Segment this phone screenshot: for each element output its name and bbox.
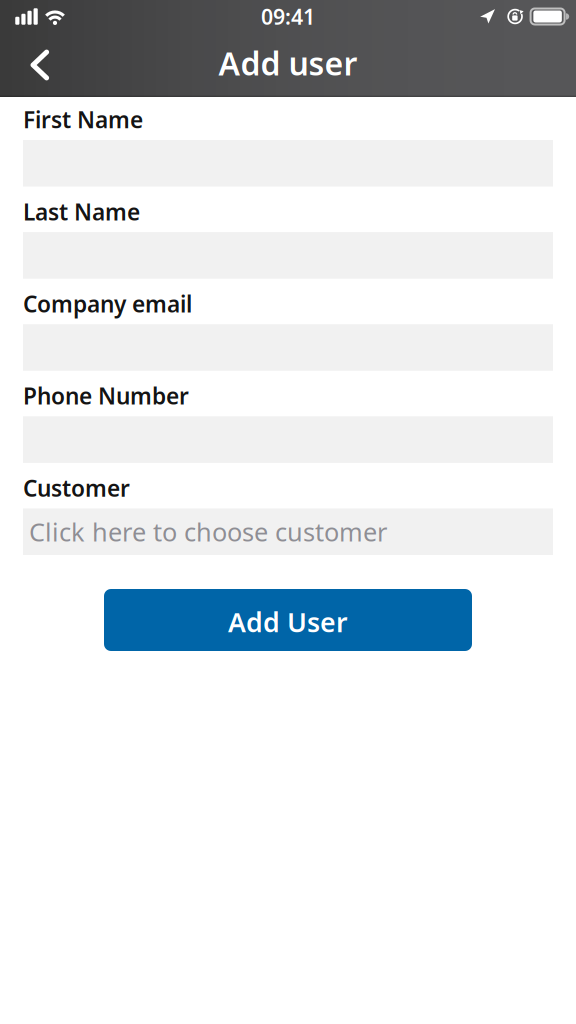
button[interactable]: Add User [104,589,472,651]
button[interactable]: Click here to choose customer [23,508,553,555]
staticText: Last Name [23,196,140,227]
button[interactable]: Back [10,34,70,96]
staticText: Phone Number [23,381,189,411]
staticText: First Name [23,104,143,134]
staticText: Customer [23,473,130,503]
staticText: Company email [23,289,192,319]
staticText: Click here to choose customer [29,515,387,548]
staticText: Add User [228,604,348,640]
staticText: Add user [218,42,357,84]
staticText: 09:41 [261,2,315,31]
